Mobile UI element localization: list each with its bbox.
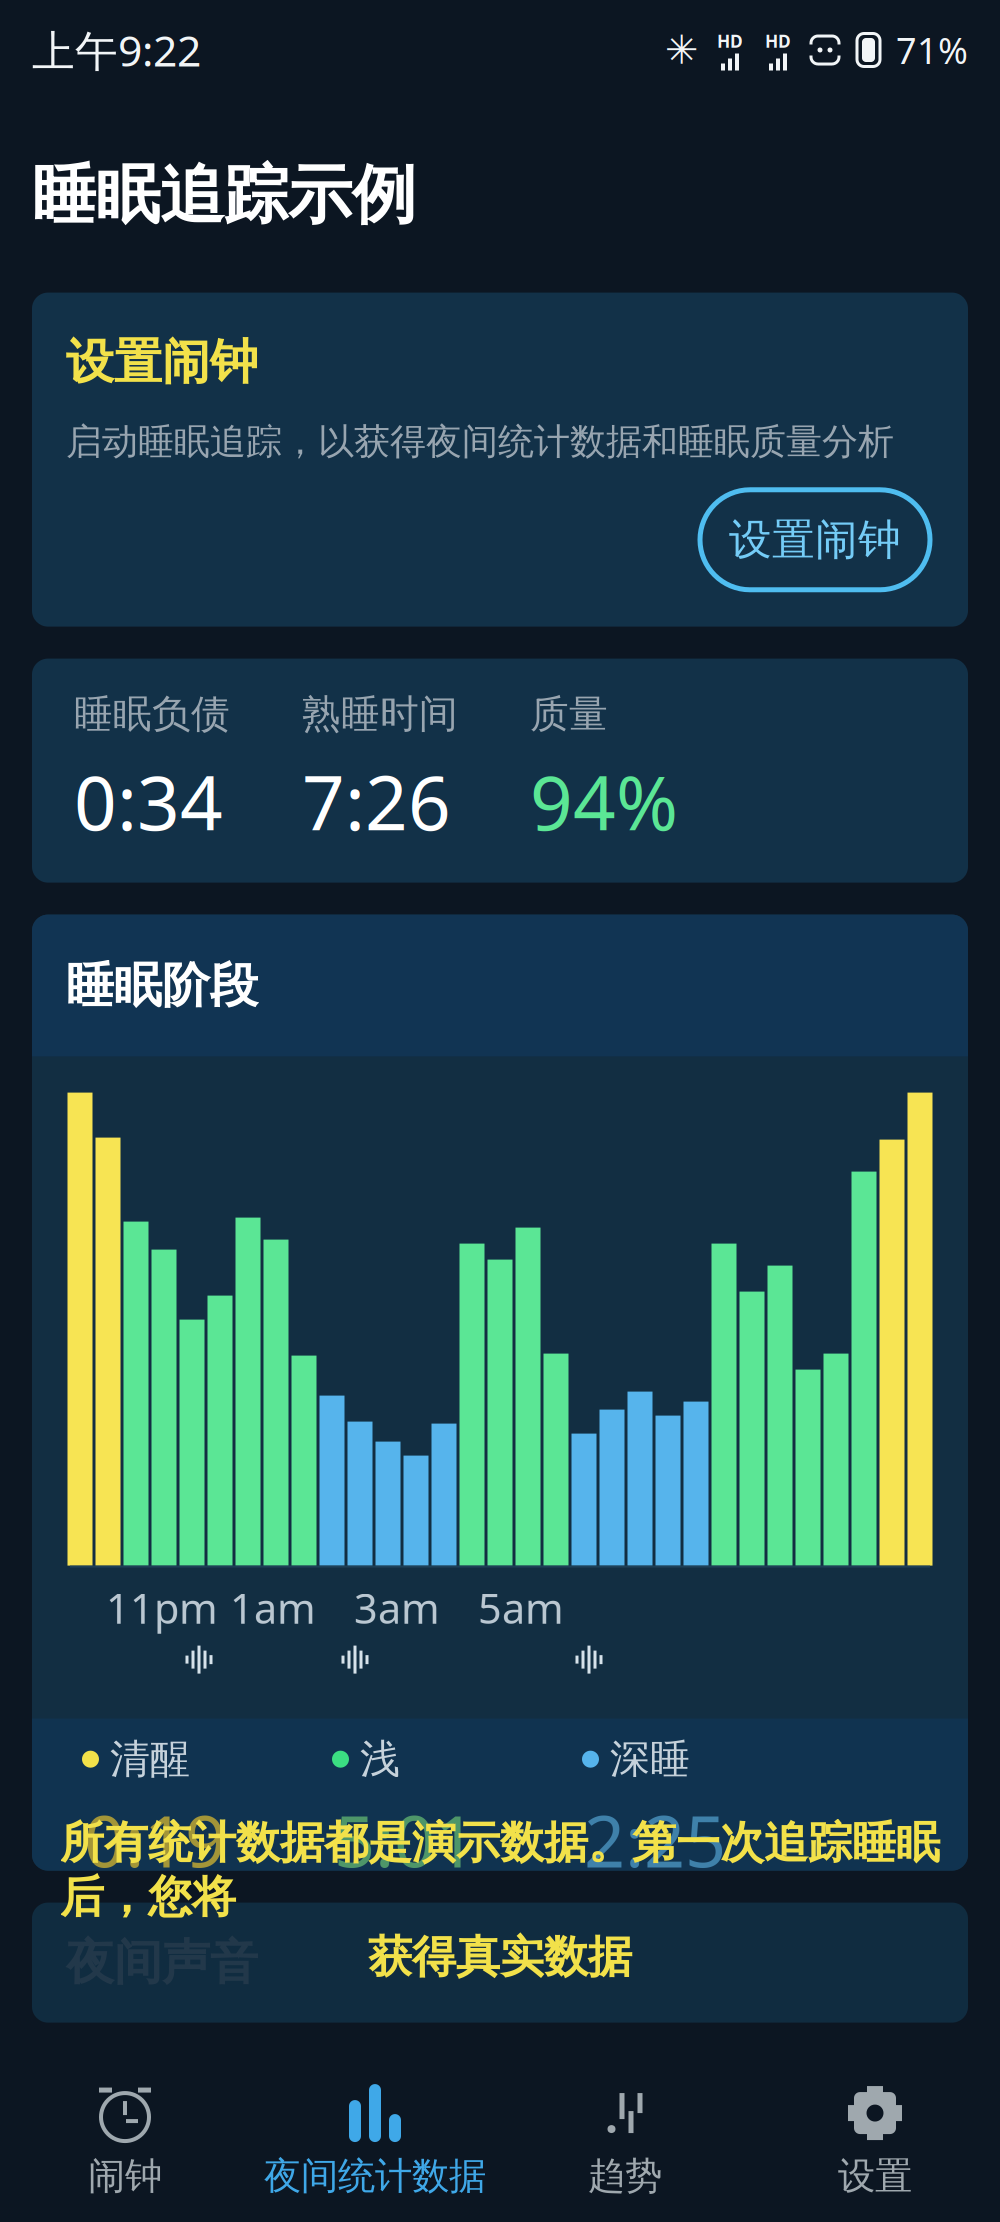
staticText: 5:01 [334, 1792, 476, 1887]
staticText: 夜间统计数据 [264, 2153, 486, 2199]
button[interactable]: 设置 [750, 2066, 1000, 2216]
staticText: 5am [478, 1580, 564, 1635]
button[interactable]: 闹钟 [0, 2066, 250, 2216]
staticText: 设置 [838, 2153, 912, 2199]
staticText: 获得真实数据 [368, 1930, 632, 1984]
staticText: 94% [530, 752, 678, 851]
staticText: 趋势 [588, 2153, 662, 2199]
staticText: 设置闹钟 [66, 333, 258, 392]
button[interactable]: 趋势 [500, 2066, 750, 2216]
staticText: 3am [354, 1580, 440, 1635]
staticText: 睡眠阶段 [66, 956, 258, 1015]
button[interactable]: 设置闹钟 [700, 490, 930, 590]
staticText: 0:19 [84, 1792, 226, 1887]
staticText: 浅 [360, 1735, 400, 1784]
staticText: 闹钟 [88, 2153, 162, 2199]
staticText: 1am [230, 1580, 316, 1635]
staticText: 清醒 [110, 1735, 190, 1784]
staticText: 睡眠负债 [74, 690, 230, 738]
staticText: 启动睡眠追踪，以获得夜间统计数据和睡眠质量分析 [66, 420, 894, 464]
staticText: HD [717, 29, 743, 52]
staticText: 质量 [530, 690, 608, 738]
staticText: HD [765, 29, 791, 52]
staticText: 设置闹钟 [729, 514, 901, 566]
staticText: 上午9:22 [32, 22, 201, 78]
staticText: 所有统计数据都是演示数据。第一次追踪睡眠后，您将 [60, 1816, 940, 1924]
staticText: 夜间声音 [66, 1933, 258, 1992]
staticText: 睡眠追踪示例 [32, 156, 416, 235]
button[interactable]: 夜间统计数据 [250, 2066, 500, 2216]
staticText: 11pm [106, 1580, 218, 1635]
staticText: ✳ [665, 27, 699, 73]
staticText: 深睡 [610, 1735, 690, 1784]
staticText: 0:34 [74, 752, 223, 851]
staticText: 2:25 [584, 1792, 726, 1887]
staticText: 71% [896, 26, 968, 74]
staticText: 7:26 [302, 752, 451, 851]
staticText: 熟睡时间 [302, 690, 458, 738]
